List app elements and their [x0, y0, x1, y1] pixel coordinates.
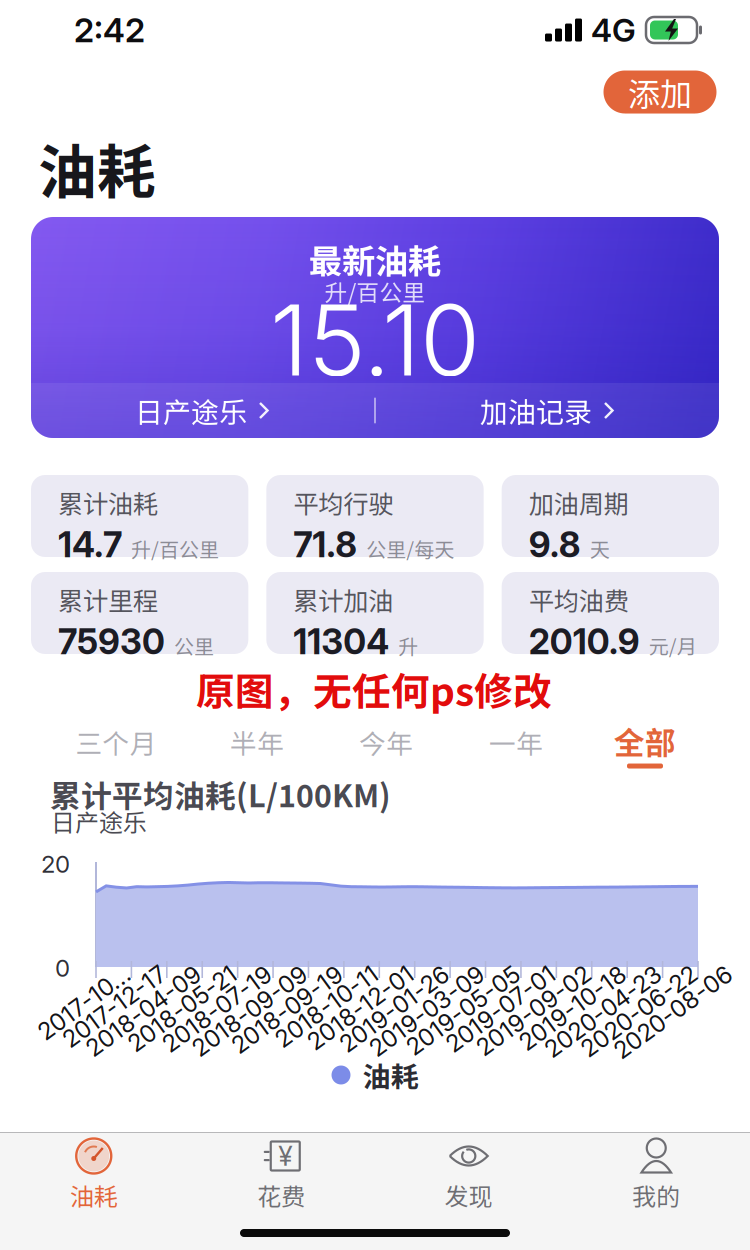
- staticText: 油耗: [362, 1055, 418, 1095]
- staticText: 半年: [230, 723, 284, 761]
- button[interactable]: 三个月: [51, 715, 181, 769]
- staticText: 累计加油: [293, 581, 393, 618]
- staticText: 天: [590, 534, 610, 563]
- staticText: 2019-10-18: [512, 1000, 638, 1029]
- staticText: 11304: [293, 621, 389, 663]
- staticText: 油耗: [70, 1178, 118, 1212]
- staticText: 升/百公里: [131, 534, 219, 563]
- staticText: 0: [55, 953, 70, 982]
- staticText: 14.7: [58, 524, 122, 566]
- staticText: 2010.9: [529, 621, 640, 663]
- staticText: 2018-07-19: [155, 1000, 284, 1029]
- staticText: 升: [398, 631, 418, 660]
- staticText: 累计油耗: [58, 484, 158, 521]
- staticText: 元/月: [649, 631, 697, 660]
- staticText: ¥: [278, 1140, 292, 1172]
- staticText: 4G: [591, 11, 636, 49]
- button[interactable]: 今年: [321, 715, 451, 769]
- staticText: 2018-12-01: [300, 1000, 425, 1029]
- staticText: 我的: [632, 1178, 680, 1212]
- staticText: 20: [41, 849, 70, 878]
- staticText: 2:42: [74, 10, 145, 50]
- staticText: 加油周期: [529, 484, 629, 521]
- button[interactable]: 发现: [375, 1138, 562, 1222]
- staticText: 平均行驶: [293, 484, 393, 521]
- staticText: 发现: [445, 1178, 493, 1212]
- staticText: 累计平均油耗(L/100KM): [50, 772, 391, 816]
- staticText: 71.8: [293, 524, 357, 566]
- staticText: 添加: [628, 69, 692, 115]
- staticText: 2017-12-17: [56, 1000, 177, 1029]
- staticText: 2017-10...: [34, 1000, 142, 1029]
- staticText: 累计里程: [58, 581, 158, 618]
- staticText: 公里/每天: [366, 534, 454, 563]
- button[interactable]: 半年: [192, 715, 322, 769]
- staticText: 平均油费: [529, 581, 629, 618]
- button[interactable]: 添加: [603, 70, 716, 113]
- button[interactable]: 我的: [562, 1138, 750, 1222]
- staticText: 2020-06-22: [572, 1000, 709, 1029]
- button[interactable]: 油耗: [0, 1138, 187, 1222]
- staticText: 一年: [489, 723, 543, 761]
- staticText: 日产途乐: [135, 390, 247, 431]
- staticText: 2018-09-19: [223, 1000, 354, 1029]
- button[interactable]: 日产途乐: [31, 383, 374, 438]
- staticText: 2019-07-01: [438, 1000, 567, 1029]
- staticText: 日产途乐: [51, 804, 147, 838]
- staticText: 2019-01-26: [332, 1000, 461, 1029]
- staticText: 2018-04-09: [77, 1000, 213, 1029]
- staticText: 今年: [359, 723, 413, 761]
- staticText: 75930: [58, 621, 165, 663]
- button[interactable]: 全部: [585, 714, 705, 768]
- staticText: 原图，无任何ps修改: [196, 661, 552, 717]
- staticText: 花费: [257, 1178, 305, 1212]
- staticText: 升/百公里: [324, 275, 425, 307]
- staticText: 2018-05-21: [120, 1000, 248, 1029]
- staticText: 油耗: [38, 125, 156, 210]
- staticText: 最新油耗: [309, 235, 441, 283]
- button[interactable]: 加油记录: [376, 383, 719, 438]
- staticText: 2020-04-23: [535, 1000, 673, 1029]
- staticText: 2019-03-09: [360, 1000, 496, 1029]
- staticText: 9.8: [529, 524, 581, 566]
- staticText: 15.10: [270, 281, 480, 399]
- staticText: 2019-05-05: [397, 1000, 531, 1029]
- staticText: 加油记录: [480, 390, 592, 431]
- staticText: 2020-08-06: [604, 1000, 744, 1029]
- staticText: 2019-09-02: [467, 1000, 602, 1029]
- button[interactable]: ¥: [187, 1138, 375, 1222]
- staticText: 公里: [174, 631, 214, 660]
- staticText: 2018-10-11: [269, 1000, 390, 1029]
- staticText: 2018-09-09: [183, 1000, 319, 1029]
- staticText: 三个月: [75, 723, 156, 761]
- button[interactable]: 一年: [451, 715, 581, 769]
- staticText: 全部: [614, 719, 676, 763]
